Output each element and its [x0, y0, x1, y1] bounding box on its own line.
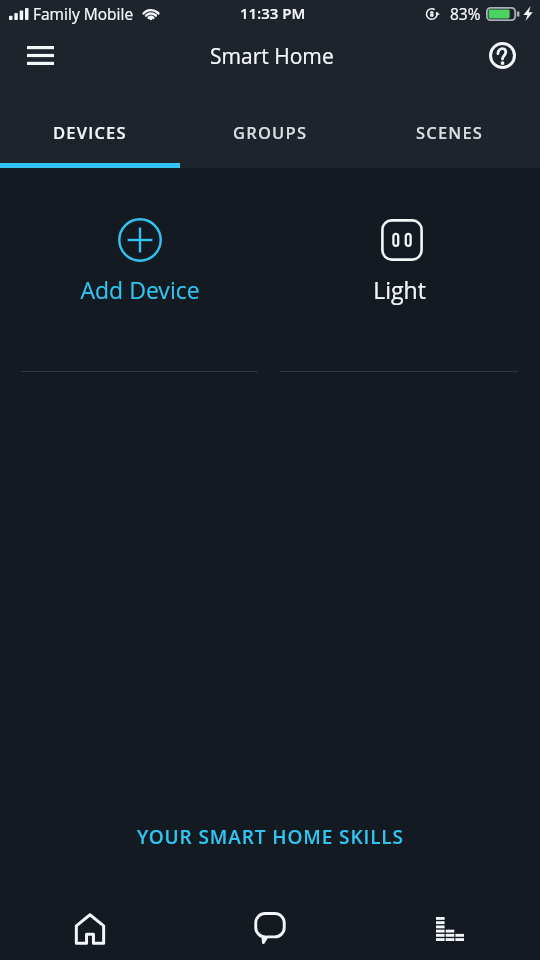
staticText: GROUPS [233, 121, 308, 143]
button[interactable]: Home [0, 888, 180, 960]
staticText: 83% [450, 3, 481, 24]
button[interactable]: DEVICES [0, 112, 180, 152]
button[interactable]: Play [360, 888, 540, 960]
button[interactable]: Menu [16, 31, 64, 79]
button[interactable]: GROUPS [180, 112, 360, 152]
button[interactable]: Help [478, 31, 526, 79]
button[interactable]: SCENES [360, 112, 540, 152]
staticText: Add Device [80, 274, 200, 305]
button[interactable]: Conversations [180, 888, 360, 960]
button[interactable]: YOUR SMART HOME SKILLS [0, 814, 540, 860]
button[interactable]: Light [270, 217, 540, 372]
staticText: Light [373, 274, 426, 305]
staticText: 11:33 PM [240, 3, 306, 23]
button[interactable]: Add Device [0, 217, 270, 372]
staticText: Smart Home [210, 42, 334, 71]
staticText: YOUR SMART HOME SKILLS [137, 824, 404, 850]
staticText: DEVICES [53, 121, 127, 143]
staticText: Family Mobile [33, 3, 134, 24]
staticText: SCENES [416, 121, 484, 143]
